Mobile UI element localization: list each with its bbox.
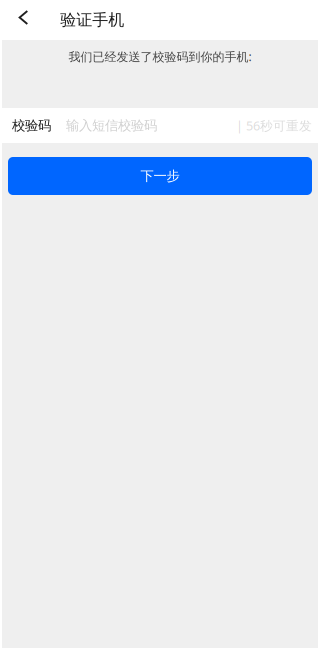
button[interactable]: 输入短信校验码 [51,108,157,143]
staticText: 验证手机 [60,10,124,30]
staticText: 下一步 [140,168,179,184]
button[interactable]: | 56秒可重发 [236,108,312,143]
staticText: 输入短信校验码 [66,117,157,134]
staticText: | 56秒可重发 [236,117,312,134]
button[interactable]: 下一步 [8,157,312,195]
button[interactable]: Back [0,0,40,40]
staticText: 我们已经发送了校验码到你的手机: [68,48,251,64]
staticText: 校验码 [12,117,51,134]
